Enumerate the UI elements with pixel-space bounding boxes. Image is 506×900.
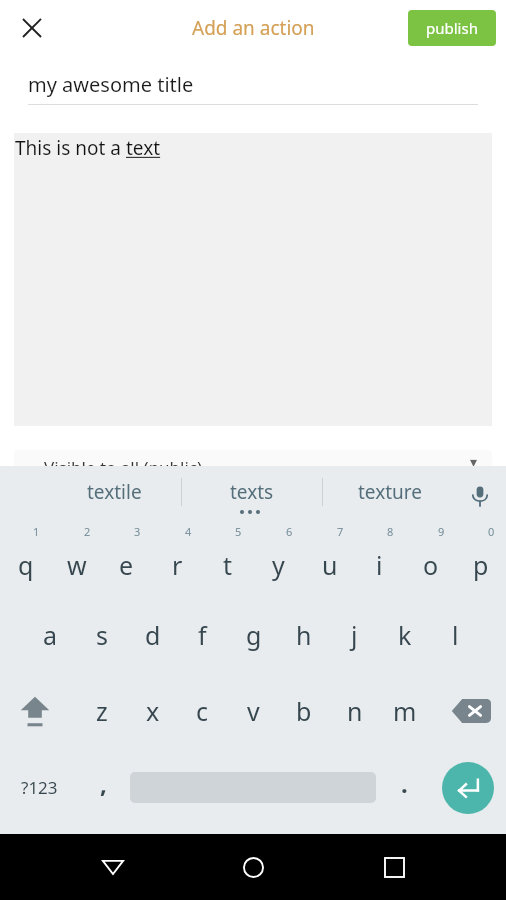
staticText: ?123: [21, 776, 58, 799]
button[interactable]: 1: [0, 522, 51, 596]
button[interactable]: Voice input: [458, 474, 502, 518]
button[interactable]: .: [380, 754, 428, 820]
button[interactable]: texts: [190, 470, 314, 514]
button[interactable]: Shift: [0, 678, 70, 744]
button[interactable]: s: [76, 602, 127, 668]
button[interactable]: v: [228, 678, 279, 744]
button[interactable]: 6: [253, 522, 304, 596]
button[interactable]: a: [25, 602, 76, 668]
button[interactable]: d: [127, 602, 178, 668]
button[interactable]: ?123: [4, 754, 74, 820]
button[interactable]: n: [329, 678, 380, 744]
staticText: 1: [33, 524, 40, 539]
staticText: my awesome title: [28, 71, 194, 98]
button[interactable]: publish: [408, 10, 496, 46]
staticText: 8: [387, 524, 394, 539]
button[interactable]: h: [278, 602, 329, 668]
staticText: j: [351, 618, 358, 652]
staticText: k: [398, 618, 412, 652]
button[interactable]: z: [76, 678, 127, 744]
button[interactable]: 7: [304, 522, 355, 596]
staticText: q: [18, 548, 34, 582]
staticText: h: [296, 618, 312, 652]
button[interactable]: Visible to all (public): [14, 450, 492, 490]
staticText: m: [393, 694, 417, 728]
staticText: d: [145, 618, 161, 652]
button[interactable]: Home: [225, 839, 281, 895]
staticText: s: [96, 618, 108, 652]
staticText: g: [246, 618, 262, 652]
staticText: 9: [438, 524, 445, 539]
staticText: a: [43, 618, 58, 652]
staticText: f: [198, 618, 207, 652]
staticText: 2: [84, 524, 91, 539]
staticText: This is not a: [15, 135, 126, 161]
staticText: l: [452, 618, 459, 652]
staticText: textile: [87, 479, 142, 505]
button[interactable]: 5: [202, 522, 253, 596]
staticText: ▾: [470, 454, 478, 470]
staticText: x: [146, 694, 160, 728]
button[interactable]: my awesome title: [0, 60, 506, 108]
staticText: n: [347, 694, 363, 728]
button[interactable]: c: [177, 678, 228, 744]
staticText: t: [223, 548, 233, 582]
button[interactable]: textile: [52, 470, 176, 514]
staticText: v: [247, 694, 260, 728]
staticText: ,: [100, 767, 107, 800]
staticText: c: [196, 694, 209, 728]
staticText: 5: [235, 524, 242, 539]
staticText: Visible to all (public): [44, 456, 203, 479]
staticText: i: [376, 548, 383, 582]
staticText: publish: [426, 18, 478, 38]
button[interactable]: 3: [101, 522, 152, 596]
button[interactable]: Enter: [442, 762, 494, 814]
staticText: u: [322, 548, 338, 582]
staticText: 4: [185, 524, 192, 539]
button[interactable]: b: [278, 678, 329, 744]
button[interactable]: Backspace: [436, 678, 506, 744]
button[interactable]: 0: [455, 522, 506, 596]
staticText: z: [96, 694, 108, 728]
button[interactable]: x: [127, 678, 178, 744]
button[interactable]: m: [379, 678, 430, 744]
staticText: e: [119, 548, 134, 582]
staticText: 7: [337, 524, 344, 539]
button[interactable]: texture: [328, 470, 452, 514]
staticText: o: [423, 548, 439, 582]
button[interactable]: j: [329, 602, 380, 668]
staticText: Add an action: [192, 15, 315, 41]
button[interactable]: 9: [405, 522, 456, 596]
button[interactable]: Close: [10, 6, 54, 50]
button[interactable]: 2: [51, 522, 102, 596]
staticText: 0: [488, 524, 495, 539]
staticText: y: [272, 548, 285, 582]
button[interactable]: ,: [78, 754, 128, 820]
button[interactable]: g: [228, 602, 279, 668]
staticText: .: [401, 767, 408, 800]
button[interactable]: f: [177, 602, 228, 668]
staticText: texture: [358, 479, 423, 505]
button[interactable]: Recent apps: [366, 839, 422, 895]
staticText: 6: [286, 524, 293, 539]
staticText: r: [172, 548, 183, 582]
staticText: p: [473, 548, 489, 582]
button[interactable]: 8: [354, 522, 405, 596]
staticText: w: [67, 548, 87, 582]
button[interactable]: Back: [85, 839, 141, 895]
staticText: b: [296, 694, 312, 728]
button[interactable]: k: [379, 602, 430, 668]
button[interactable]: 4: [152, 522, 203, 596]
staticText: text: [126, 135, 161, 161]
button[interactable]: This is not a: [14, 133, 492, 426]
staticText: texts: [230, 479, 274, 505]
button[interactable]: l: [430, 602, 481, 668]
staticText: 3: [134, 524, 141, 539]
